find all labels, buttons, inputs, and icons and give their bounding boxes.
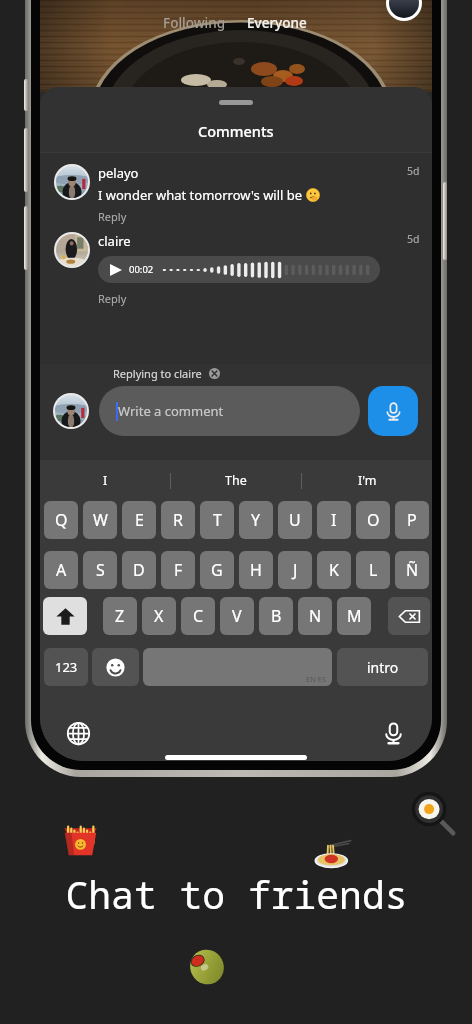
staticText: C <box>193 605 204 627</box>
staticText: intro <box>367 658 399 677</box>
staticText: J <box>293 559 298 581</box>
button[interactable]: C <box>181 597 215 635</box>
button[interactable]: Following <box>163 14 226 32</box>
button[interactable]: U <box>278 501 312 539</box>
staticText: 5d <box>407 164 420 178</box>
button[interactable]: The <box>171 460 301 501</box>
button[interactable]: I <box>317 501 351 539</box>
button[interactable]: Reply <box>98 209 127 224</box>
staticText: H <box>250 559 262 581</box>
button[interactable]: Emoji <box>92 648 139 686</box>
staticText: W <box>93 509 108 531</box>
button[interactable]: Record voice comment <box>368 386 418 436</box>
staticText: A <box>56 559 67 581</box>
staticText: I <box>103 472 108 489</box>
button[interactable]: Ñ <box>395 551 429 589</box>
button[interactable]: Y <box>239 501 273 539</box>
staticText: EN ES <box>306 674 327 684</box>
button[interactable]: Profile <box>389 0 419 18</box>
button[interactable]: intro <box>337 648 428 686</box>
staticText: pelayo <box>98 164 139 182</box>
staticText: B <box>271 605 282 627</box>
button[interactable]: B <box>259 597 293 635</box>
staticText: G <box>211 559 223 581</box>
staticText: P <box>407 509 417 531</box>
button[interactable]: A <box>44 551 78 589</box>
staticText: Ñ <box>406 559 419 581</box>
staticText: Q <box>55 509 68 531</box>
button[interactable]: Change language <box>66 721 91 746</box>
button[interactable]: Backspace <box>388 597 430 635</box>
staticText: The <box>225 472 247 489</box>
button[interactable]: I'm <box>302 460 432 501</box>
button[interactable]: 123 <box>44 648 88 686</box>
button[interactable]: O <box>356 501 390 539</box>
button[interactable]: Voice input <box>381 721 406 746</box>
staticText: Z <box>115 605 125 627</box>
button[interactable]: H <box>239 551 273 589</box>
staticText: T <box>213 509 222 531</box>
button[interactable]: Play voice message <box>98 256 380 283</box>
button[interactable]: R <box>161 501 195 539</box>
button[interactable]: M <box>337 597 371 635</box>
button[interactable]: pelayo <box>40 164 432 224</box>
staticText: R <box>173 509 183 531</box>
staticText: K <box>329 559 339 581</box>
staticText: F <box>174 559 183 581</box>
staticText: I'm <box>358 472 377 489</box>
button[interactable]: T <box>200 501 234 539</box>
staticText: O <box>367 509 380 531</box>
staticText: U <box>289 509 301 531</box>
staticText: Write a comment <box>118 402 224 420</box>
staticText: S <box>96 559 105 581</box>
staticText: X <box>154 605 164 627</box>
button[interactable]: Reply <box>98 291 127 306</box>
button[interactable]: E <box>122 501 156 539</box>
staticText: I <box>331 509 337 531</box>
staticText: V <box>232 605 242 627</box>
button[interactable]: Replying to claire <box>113 366 220 381</box>
staticText: D <box>133 559 145 581</box>
staticText: Comments <box>198 121 274 141</box>
button[interactable]: N <box>298 597 332 635</box>
staticText: 5d <box>407 232 420 246</box>
staticText: M <box>347 605 362 627</box>
button[interactable]: Space <box>143 648 332 686</box>
staticText: L <box>369 559 378 581</box>
button[interactable]: S <box>83 551 117 589</box>
button[interactable]: D <box>122 551 156 589</box>
button[interactable]: P <box>395 501 429 539</box>
button[interactable]: G <box>200 551 234 589</box>
button[interactable]: F <box>161 551 195 589</box>
staticText: E <box>135 509 144 531</box>
button[interactable]: claire <box>40 232 432 306</box>
staticText: 00:02 <box>129 263 154 276</box>
button[interactable]: Shift <box>43 597 87 635</box>
staticText: Chat to friends <box>65 868 408 920</box>
button[interactable]: W <box>83 501 117 539</box>
button[interactable]: Everyone <box>247 14 307 32</box>
staticText: I wonder what tomorrow's will be <box>98 186 306 204</box>
staticText: 123 <box>55 658 78 676</box>
staticText: claire <box>98 232 131 250</box>
button[interactable]: Write a comment <box>99 386 360 436</box>
button[interactable]: X <box>142 597 176 635</box>
button[interactable]: J <box>278 551 312 589</box>
button[interactable]: Q <box>44 501 78 539</box>
staticText: N <box>309 605 322 627</box>
button[interactable]: I <box>40 460 170 501</box>
button[interactable]: V <box>220 597 254 635</box>
button[interactable]: L <box>356 551 390 589</box>
button[interactable]: K <box>317 551 351 589</box>
button[interactable]: Z <box>103 597 137 635</box>
staticText: Y <box>251 509 261 531</box>
staticText: Replying to claire <box>113 366 202 381</box>
